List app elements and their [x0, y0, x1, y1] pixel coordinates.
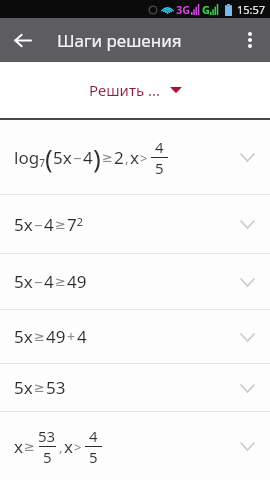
staticText: ≥ — [102, 150, 113, 165]
staticText: 3G — [176, 2, 191, 17]
staticText: − — [73, 148, 82, 168]
staticText: ) — [93, 140, 101, 175]
staticText: , — [59, 438, 63, 456]
staticText: 4 — [77, 325, 87, 348]
button[interactable]: 5x — [0, 195, 270, 253]
staticText: 5x — [14, 325, 33, 348]
button[interactable]: 5x — [0, 310, 270, 363]
staticText: 72 — [67, 213, 84, 236]
button[interactable]: x — [0, 412, 270, 480]
button[interactable]: log7 — [0, 120, 270, 194]
staticText: + — [67, 327, 76, 346]
staticText: 49 — [67, 270, 87, 293]
staticText: 5 — [155, 158, 164, 178]
staticText: x — [14, 435, 23, 458]
staticText: x — [64, 435, 73, 458]
staticText: − — [34, 272, 43, 292]
button[interactable]: Ещё — [233, 23, 267, 57]
staticText: ≥ — [55, 217, 66, 232]
staticText: G — [202, 2, 210, 17]
staticText: 5 — [43, 447, 52, 467]
staticText: ≥ — [55, 274, 66, 289]
button[interactable]: Решить ... — [79, 74, 192, 106]
staticText: ≥ — [34, 329, 45, 344]
staticText: x — [130, 146, 139, 169]
button[interactable]: Назад — [4, 22, 40, 58]
staticText: 4 — [83, 146, 93, 169]
staticText: ≥ — [24, 439, 35, 454]
staticText: − — [34, 215, 43, 235]
staticText: 4 — [44, 213, 54, 236]
staticText: Решить ... — [89, 80, 161, 100]
staticText: 5x — [53, 146, 72, 169]
staticText: 5 — [89, 447, 98, 467]
staticText: 5x — [14, 270, 33, 293]
staticText: Шаги решения — [57, 29, 182, 52]
staticText: ≥ — [34, 380, 45, 395]
staticText: , — [125, 149, 129, 167]
staticText: 53 — [38, 426, 56, 446]
staticText: 53 — [46, 376, 66, 399]
staticText: > — [74, 438, 82, 456]
staticText: 4 — [44, 270, 54, 293]
staticText: 5x — [14, 376, 33, 399]
staticText: 15:57 — [237, 2, 266, 17]
staticText: ( — [45, 140, 53, 175]
staticText: 5x — [14, 213, 33, 236]
staticText: 2 — [114, 146, 124, 169]
staticText: 49 — [46, 325, 66, 348]
staticText: log7 — [14, 146, 45, 170]
staticText: 4 — [155, 137, 164, 157]
button[interactable]: 5x — [0, 364, 270, 411]
button[interactable]: 5x — [0, 254, 270, 309]
staticText: > — [140, 149, 148, 167]
staticText: 4 — [89, 426, 98, 446]
